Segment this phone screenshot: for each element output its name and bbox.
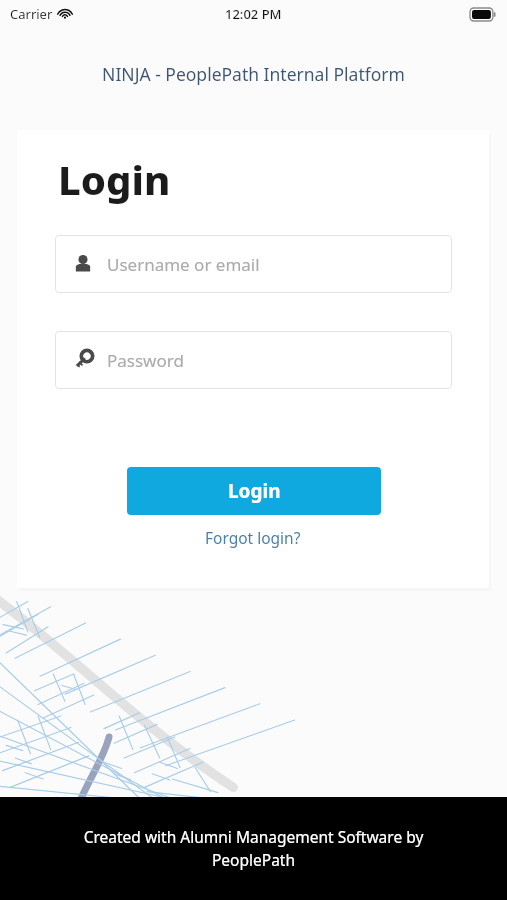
staticText: Username or email — [107, 253, 260, 276]
button[interactable]: Login — [127, 467, 381, 515]
staticText: 12:02 PM — [225, 5, 282, 23]
staticText: Login — [228, 478, 281, 504]
staticText: Login — [58, 152, 171, 206]
staticText: Created with Alumni Management Software … — [55, 826, 452, 871]
staticText: Carrier — [10, 5, 53, 23]
staticText: Forgot login? — [205, 527, 301, 548]
button[interactable]: Username or email — [55, 235, 452, 293]
button[interactable]: Forgot login? — [17, 525, 489, 549]
staticText: Password — [107, 349, 184, 372]
button[interactable]: Password — [55, 331, 452, 389]
staticText: NINJA - PeoplePath Internal Platform — [0, 62, 507, 86]
